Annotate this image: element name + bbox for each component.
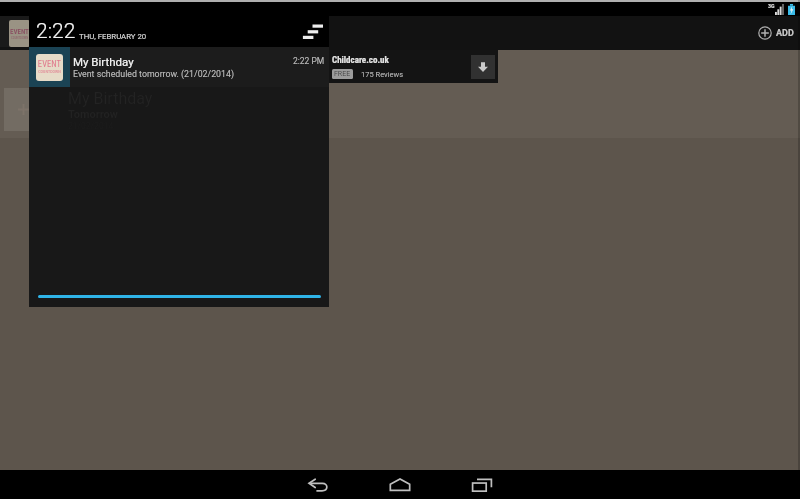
staticText: My Birthday: [73, 55, 134, 68]
other: Battery charging: [788, 4, 795, 15]
button[interactable]: Quick settings: [303, 16, 323, 47]
button[interactable]: EVENT: [29, 47, 329, 87]
button[interactable]: Recent apps: [452, 470, 512, 499]
staticText: EVENT: [10, 28, 29, 36]
staticText: 3G: [768, 2, 775, 9]
button[interactable]: Childcare.co.uk: [329, 50, 498, 83]
staticText: Tomorrow: [68, 108, 118, 121]
button[interactable]: Back: [288, 470, 348, 499]
staticText: COUNTDOWN: [36, 69, 63, 74]
staticText: ADD: [776, 28, 794, 39]
staticText: EVENT: [36, 59, 63, 69]
button[interactable]: My Birthday: [68, 86, 800, 128]
button[interactable]: Home: [370, 470, 430, 499]
staticText: My Birthday: [68, 86, 153, 105]
staticText: Tomorrow: [68, 105, 118, 118]
staticText: COUNTDOWN: [11, 36, 29, 40]
button[interactable]: ADD: [748, 16, 800, 50]
staticText: THU, FEBRUARY 20: [79, 32, 147, 41]
staticText: My Birthday: [68, 89, 153, 108]
staticText: Childcare.co.uk: [332, 55, 389, 66]
staticText: Event scheduled tomorrow. (21/02/2014): [73, 69, 234, 79]
staticText: FREE: [334, 70, 351, 78]
staticText: 175 Reviews: [361, 70, 403, 79]
staticText: 2:22: [36, 19, 76, 44]
other: Signal strength: [775, 4, 784, 15]
button[interactable]: [4, 88, 42, 131]
staticText: 2:22 PM: [293, 56, 325, 66]
button[interactable]: Download: [471, 55, 495, 79]
